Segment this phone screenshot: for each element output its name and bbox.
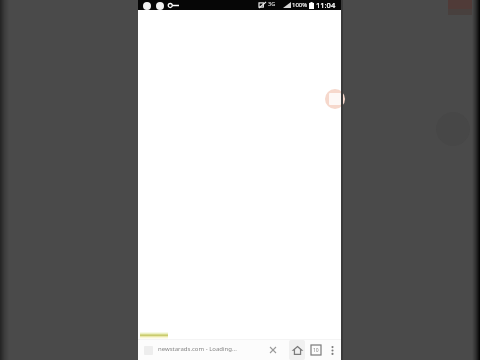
- button[interactable]: More options: [325, 343, 339, 357]
- staticText: 3G: [268, 0, 276, 7]
- staticText: newstarads.com - Loading...: [158, 345, 253, 353]
- staticText: 10: [313, 347, 319, 354]
- button[interactable]: Close tab: [266, 343, 280, 357]
- button[interactable]: newstarads.com - Loading...: [140, 340, 264, 360]
- staticText: 11:04: [316, 0, 336, 10]
- button[interactable]: Tabs: [308, 342, 324, 358]
- button[interactable]: Home: [289, 340, 305, 360]
- staticText: 100%: [292, 1, 308, 9]
